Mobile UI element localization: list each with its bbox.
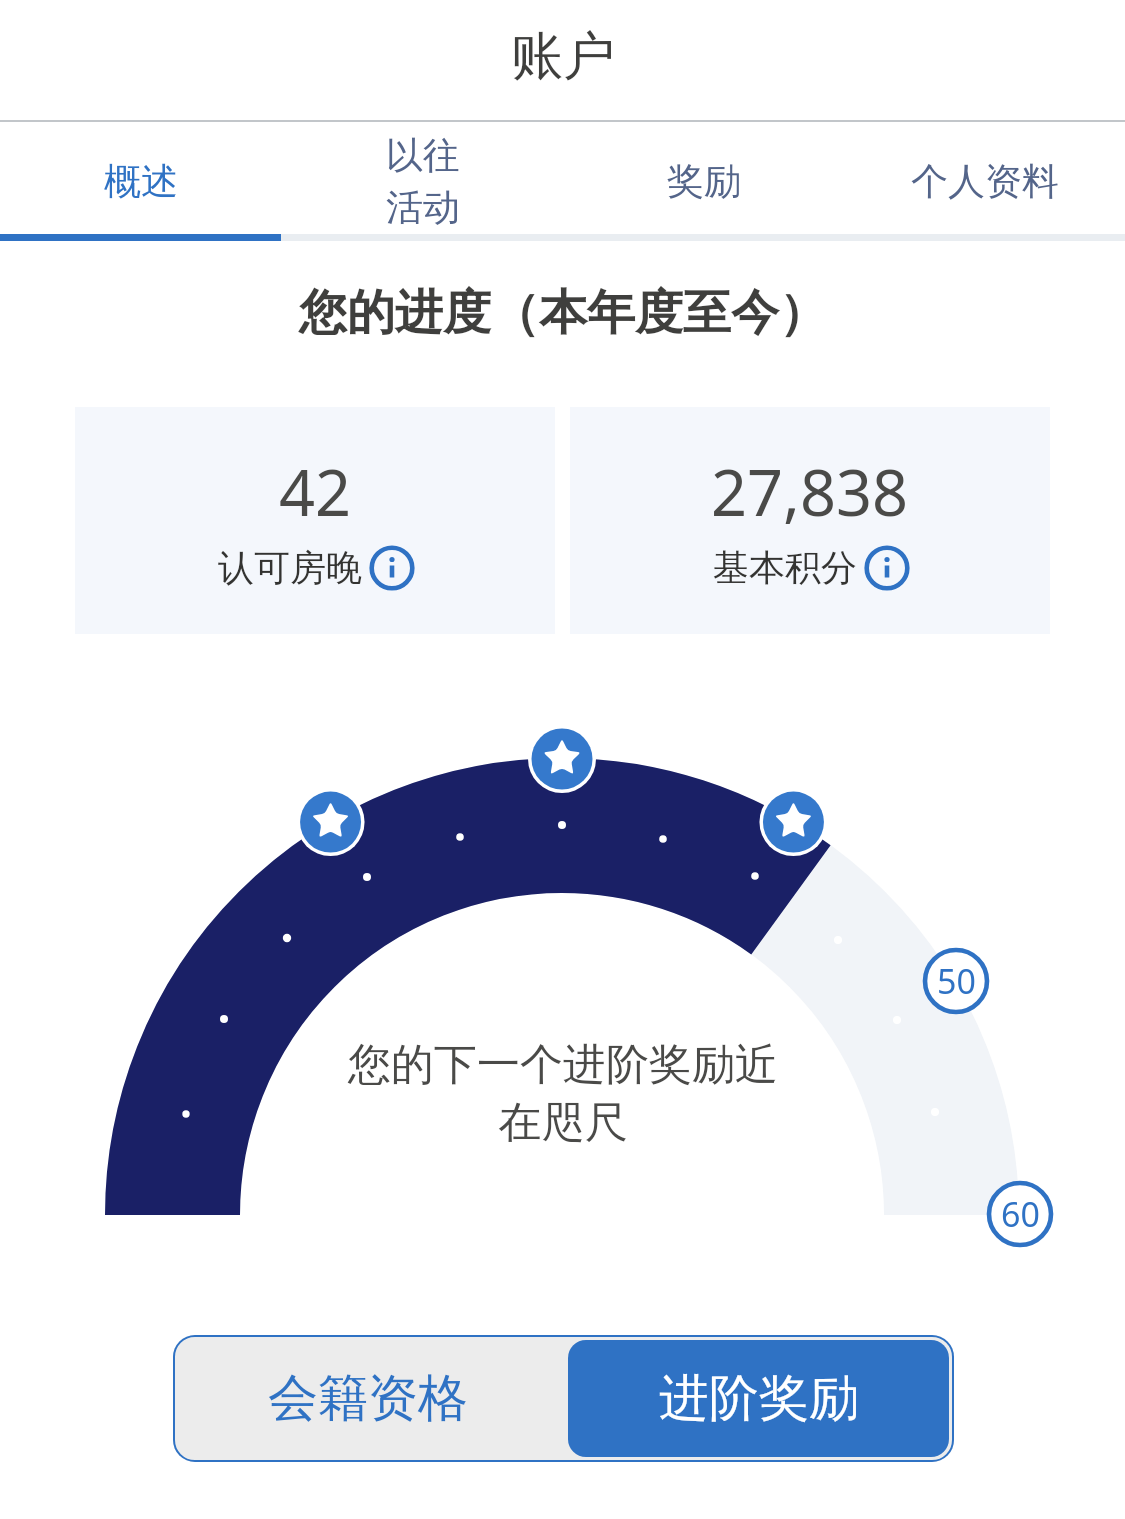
button[interactable]: 奖励 bbox=[563, 122, 844, 241]
button[interactable]: About 基本积分 bbox=[866, 547, 908, 589]
button[interactable]: 概述 bbox=[0, 122, 282, 241]
button[interactable]: 以往 活动 bbox=[282, 122, 563, 241]
staticText: 50 bbox=[937, 958, 976, 1004]
staticText: 您的进度（本年度至今） bbox=[299, 283, 827, 343]
staticText: 基本积分 bbox=[713, 545, 857, 590]
button[interactable]: 个人资料 bbox=[844, 122, 1125, 241]
staticText: 会籍资格 bbox=[268, 1367, 468, 1430]
staticText: 以往 活动 bbox=[386, 132, 460, 231]
staticText: 27,838 bbox=[711, 449, 909, 535]
button[interactable]: 会籍资格 bbox=[173, 1335, 563, 1462]
staticText: 认可房晚 bbox=[218, 545, 362, 590]
staticText: 您的下一个进阶奖励近 在咫尺 bbox=[348, 1038, 778, 1150]
button[interactable]: About 认可房晚 bbox=[371, 547, 413, 589]
staticText: 概述 bbox=[104, 158, 178, 205]
staticText: 进阶奖励 bbox=[659, 1367, 859, 1430]
staticText: 奖励 bbox=[667, 158, 741, 205]
staticText: 60 bbox=[1001, 1191, 1040, 1237]
button[interactable]: 27,838 bbox=[570, 407, 1050, 634]
staticText: 账户 bbox=[511, 24, 615, 90]
button[interactable]: 进阶奖励 bbox=[568, 1340, 949, 1457]
button[interactable]: 42 bbox=[75, 407, 555, 634]
staticText: 个人资料 bbox=[911, 158, 1059, 205]
staticText: 42 bbox=[279, 449, 352, 535]
